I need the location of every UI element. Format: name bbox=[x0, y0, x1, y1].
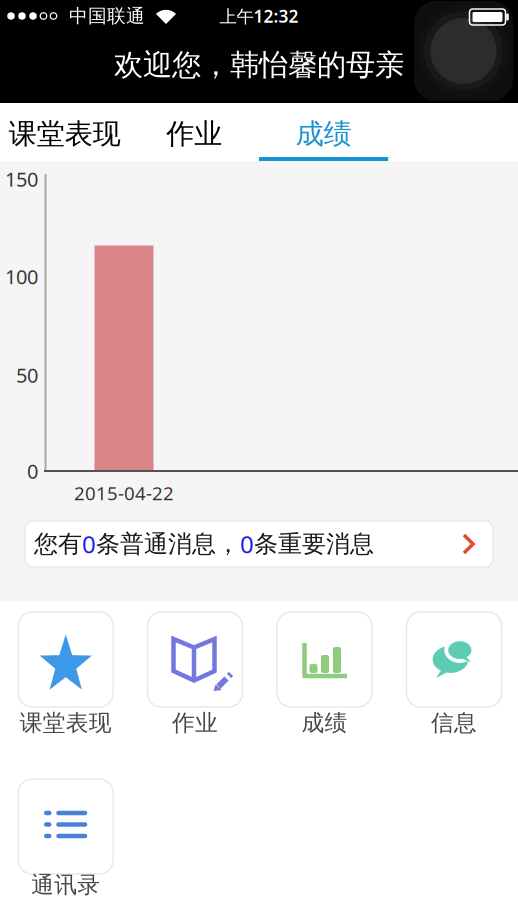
button[interactable]: 成绩 bbox=[259, 103, 388, 161]
staticText: 条普通消息， bbox=[96, 529, 240, 559]
button[interactable]: 作业 bbox=[139, 604, 250, 745]
button[interactable]: 成绩 bbox=[269, 604, 380, 745]
staticText: 通讯录 bbox=[31, 871, 100, 899]
staticText: 50 bbox=[16, 362, 38, 388]
staticText: 作业 bbox=[172, 709, 218, 737]
staticText: 上午12:32 bbox=[219, 4, 298, 27]
staticText: 成绩 bbox=[296, 117, 352, 151]
button[interactable]: 您有 bbox=[25, 521, 493, 567]
staticText: 欢迎您，韩怡馨的母亲 bbox=[114, 47, 404, 83]
staticText: 150 bbox=[5, 166, 38, 192]
staticText: 0 bbox=[82, 528, 96, 560]
button[interactable]: 信息 bbox=[398, 604, 509, 745]
staticText: 100 bbox=[5, 263, 38, 290]
staticText: 0 bbox=[27, 458, 38, 484]
staticText: 成绩 bbox=[301, 709, 347, 737]
staticText: 0 bbox=[240, 528, 254, 560]
staticText: 课堂表现 bbox=[20, 709, 112, 737]
button[interactable]: 作业 bbox=[129, 103, 259, 161]
button[interactable] bbox=[414, 1, 513, 101]
button[interactable]: 课堂表现 bbox=[10, 604, 121, 745]
staticText: 2015-04-22 bbox=[74, 481, 174, 505]
button[interactable]: 课堂表现 bbox=[0, 103, 129, 161]
staticText: 课堂表现 bbox=[9, 117, 121, 151]
staticText: 信息 bbox=[431, 709, 477, 737]
staticText: 条重要消息 bbox=[254, 529, 374, 559]
staticText: 作业 bbox=[166, 117, 222, 151]
button[interactable]: 通讯录 bbox=[10, 771, 121, 907]
staticText: 您有 bbox=[34, 529, 82, 559]
staticText: 中国联通 bbox=[69, 4, 145, 27]
